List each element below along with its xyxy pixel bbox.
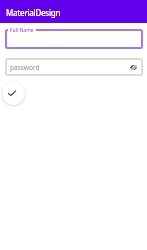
button[interactable] bbox=[5, 29, 143, 49]
staticText: password bbox=[10, 63, 130, 72]
staticText: Full Name bbox=[10, 27, 34, 34]
staticText: MaterialDesign bbox=[6, 7, 61, 18]
button[interactable]: Show password bbox=[130, 64, 137, 71]
button[interactable]: password bbox=[5, 58, 143, 76]
button[interactable]: Submit bbox=[2, 82, 25, 105]
